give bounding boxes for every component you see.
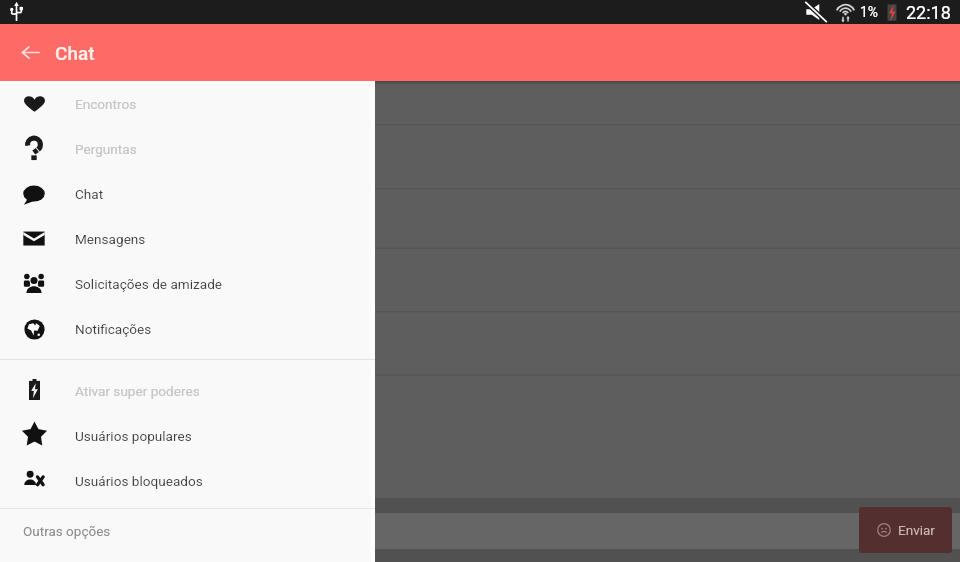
staticText: Outras opções <box>23 523 111 539</box>
staticText: Enviar <box>898 522 935 538</box>
button[interactable]: Usuários populares <box>0 414 375 459</box>
button[interactable]: Back <box>0 24 58 81</box>
button[interactable]: Encontros <box>0 82 375 127</box>
staticText: Chat <box>75 186 104 202</box>
button[interactable]: Ativar super poderes <box>0 369 375 414</box>
button[interactable]: Usuários bloqueados <box>0 459 375 504</box>
button[interactable]: Perguntas <box>0 127 375 172</box>
button[interactable]: Solicitações de amizade <box>0 262 375 307</box>
staticText: Ativar super poderes <box>75 383 200 399</box>
staticText: Mensagens <box>75 231 146 247</box>
button[interactable]: Outras opções <box>0 509 375 561</box>
staticText: 22:18 <box>906 2 951 23</box>
staticText: Usuários populares <box>75 428 192 444</box>
staticText: Solicitações de amizade <box>75 276 223 292</box>
button[interactable]: Enviar <box>859 507 952 553</box>
staticText: Usuários bloqueados <box>75 473 203 489</box>
staticText: 1% <box>860 4 879 20</box>
staticText: Encontros <box>75 96 137 112</box>
button[interactable]: Mensagens <box>0 217 375 262</box>
staticText: Chat <box>55 42 95 64</box>
button[interactable]: Notificações <box>0 307 375 352</box>
staticText: Perguntas <box>75 141 137 157</box>
button[interactable]: Chat <box>0 172 375 217</box>
staticText: Notificações <box>75 321 152 337</box>
